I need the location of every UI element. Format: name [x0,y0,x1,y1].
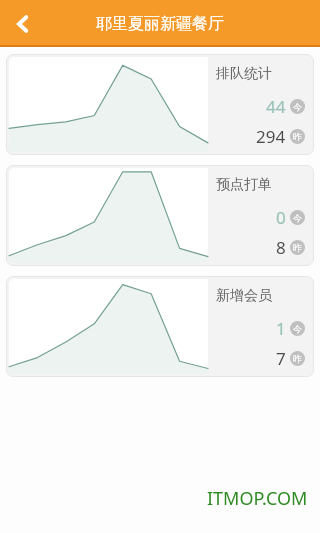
button[interactable]: 预点打单 [6,165,314,266]
staticText: 昨 [293,242,302,253]
staticText: 1 [276,317,286,340]
staticText: 预点打单 [216,176,272,194]
button[interactable]: 新增会员 [6,276,314,377]
staticText: 294 [256,125,286,147]
staticText: ITMOP.COM [207,486,308,511]
button[interactable]: 排队统计 [6,54,314,155]
staticText: 今 [293,212,302,223]
staticText: 44 [266,95,286,118]
staticText: 今 [293,323,302,334]
staticText: 7 [276,347,286,369]
staticText: 昨 [293,353,302,364]
button[interactable]: Back [0,1,46,47]
staticText: 排队统计 [216,65,272,83]
staticText: 8 [276,236,286,258]
staticText: 昨 [293,131,302,142]
staticText: 新增会员 [216,287,272,305]
staticText: 今 [293,101,302,112]
staticText: 耶里夏丽新疆餐厅 [96,14,224,34]
staticText: 0 [276,206,286,229]
